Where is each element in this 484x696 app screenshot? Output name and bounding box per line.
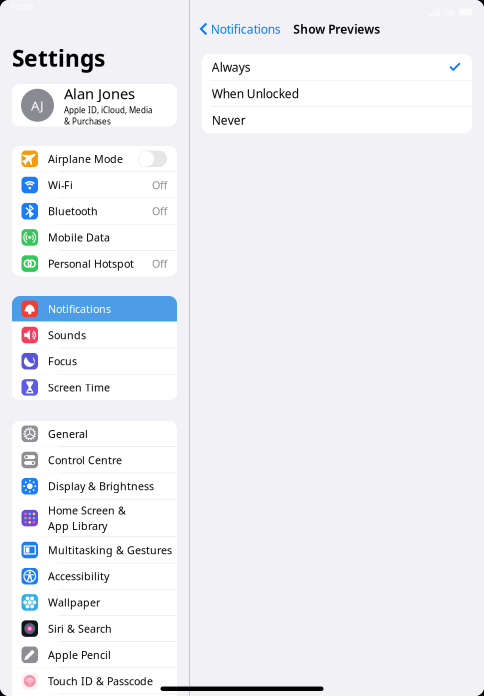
staticText: Settings [12, 43, 105, 73]
staticText: Notifications [211, 21, 281, 37]
staticText: AJ [31, 96, 44, 114]
staticText: Apple Pencil [48, 648, 111, 662]
button[interactable]: Always [202, 54, 472, 80]
staticText: Bluetooth [48, 204, 98, 218]
staticText: 10:00 [10, 0, 33, 13]
button[interactable]: When Unlocked [202, 81, 472, 107]
button[interactable]: Accessibility [12, 563, 177, 589]
button[interactable]: Screen Time [12, 375, 177, 400]
staticText: Multitasking & Gestures [48, 543, 172, 557]
staticText: Alan Jones [64, 84, 135, 103]
button[interactable]: Apple Pencil [12, 642, 177, 668]
button[interactable]: Focus [12, 348, 177, 374]
staticText: When Unlocked [212, 86, 299, 101]
staticText: Focus [48, 354, 77, 368]
button[interactable]: Airplane Mode [12, 146, 177, 172]
button[interactable]: Notifications [12, 296, 177, 322]
button[interactable]: Home Screen & [12, 500, 177, 537]
staticText: Show Previews [293, 21, 380, 37]
staticText: Screen Time [48, 380, 110, 394]
staticText: App Library [48, 519, 107, 533]
button[interactable]: Personal Hotspot [12, 251, 177, 276]
staticText: Home Screen & [48, 503, 126, 517]
staticText: General [48, 427, 88, 441]
staticText: Never [212, 112, 246, 128]
staticText: Accessibility [48, 569, 109, 583]
staticText: Display & Brightness [48, 479, 154, 493]
staticText: Airplane Mode [48, 152, 123, 166]
button[interactable]: Siri & Search [12, 616, 177, 641]
staticText: Always [212, 59, 251, 75]
button[interactable]: Sounds [12, 322, 177, 348]
staticText: Mobile Data [48, 230, 110, 244]
button[interactable]: Wallpaper [12, 590, 177, 615]
button[interactable]: Touch ID & Passcode [12, 668, 177, 694]
button[interactable]: General [12, 421, 177, 447]
button[interactable]: AJ [12, 84, 177, 126]
button[interactable]: Display & Brightness [12, 473, 177, 499]
staticText: Notifications [48, 302, 111, 316]
button[interactable]: Multitasking & Gestures [12, 537, 177, 563]
button[interactable]: Bluetooth [12, 198, 177, 224]
staticText: Siri & Search [48, 621, 112, 636]
staticText: Wallpaper [48, 595, 100, 609]
button[interactable]: Wi-Fi [12, 172, 177, 198]
button[interactable]: Notifications [190, 17, 281, 41]
staticText: Apple ID, iCloud, Media [64, 105, 152, 115]
staticText: Touch ID & Passcode [48, 674, 153, 688]
staticText: Off [152, 256, 167, 271]
button[interactable]: Mobile Data [12, 225, 177, 250]
staticText: Control Centre [48, 453, 122, 467]
staticText: Off [152, 204, 167, 218]
button[interactable]: Control Centre [12, 447, 177, 473]
button[interactable]: Never [202, 107, 472, 133]
staticText: Wi-Fi [48, 178, 73, 192]
staticText: & Purchases [64, 116, 111, 127]
staticText: Personal Hotspot [48, 256, 134, 271]
staticText: Off [152, 178, 167, 192]
staticText: Sounds [48, 328, 86, 342]
